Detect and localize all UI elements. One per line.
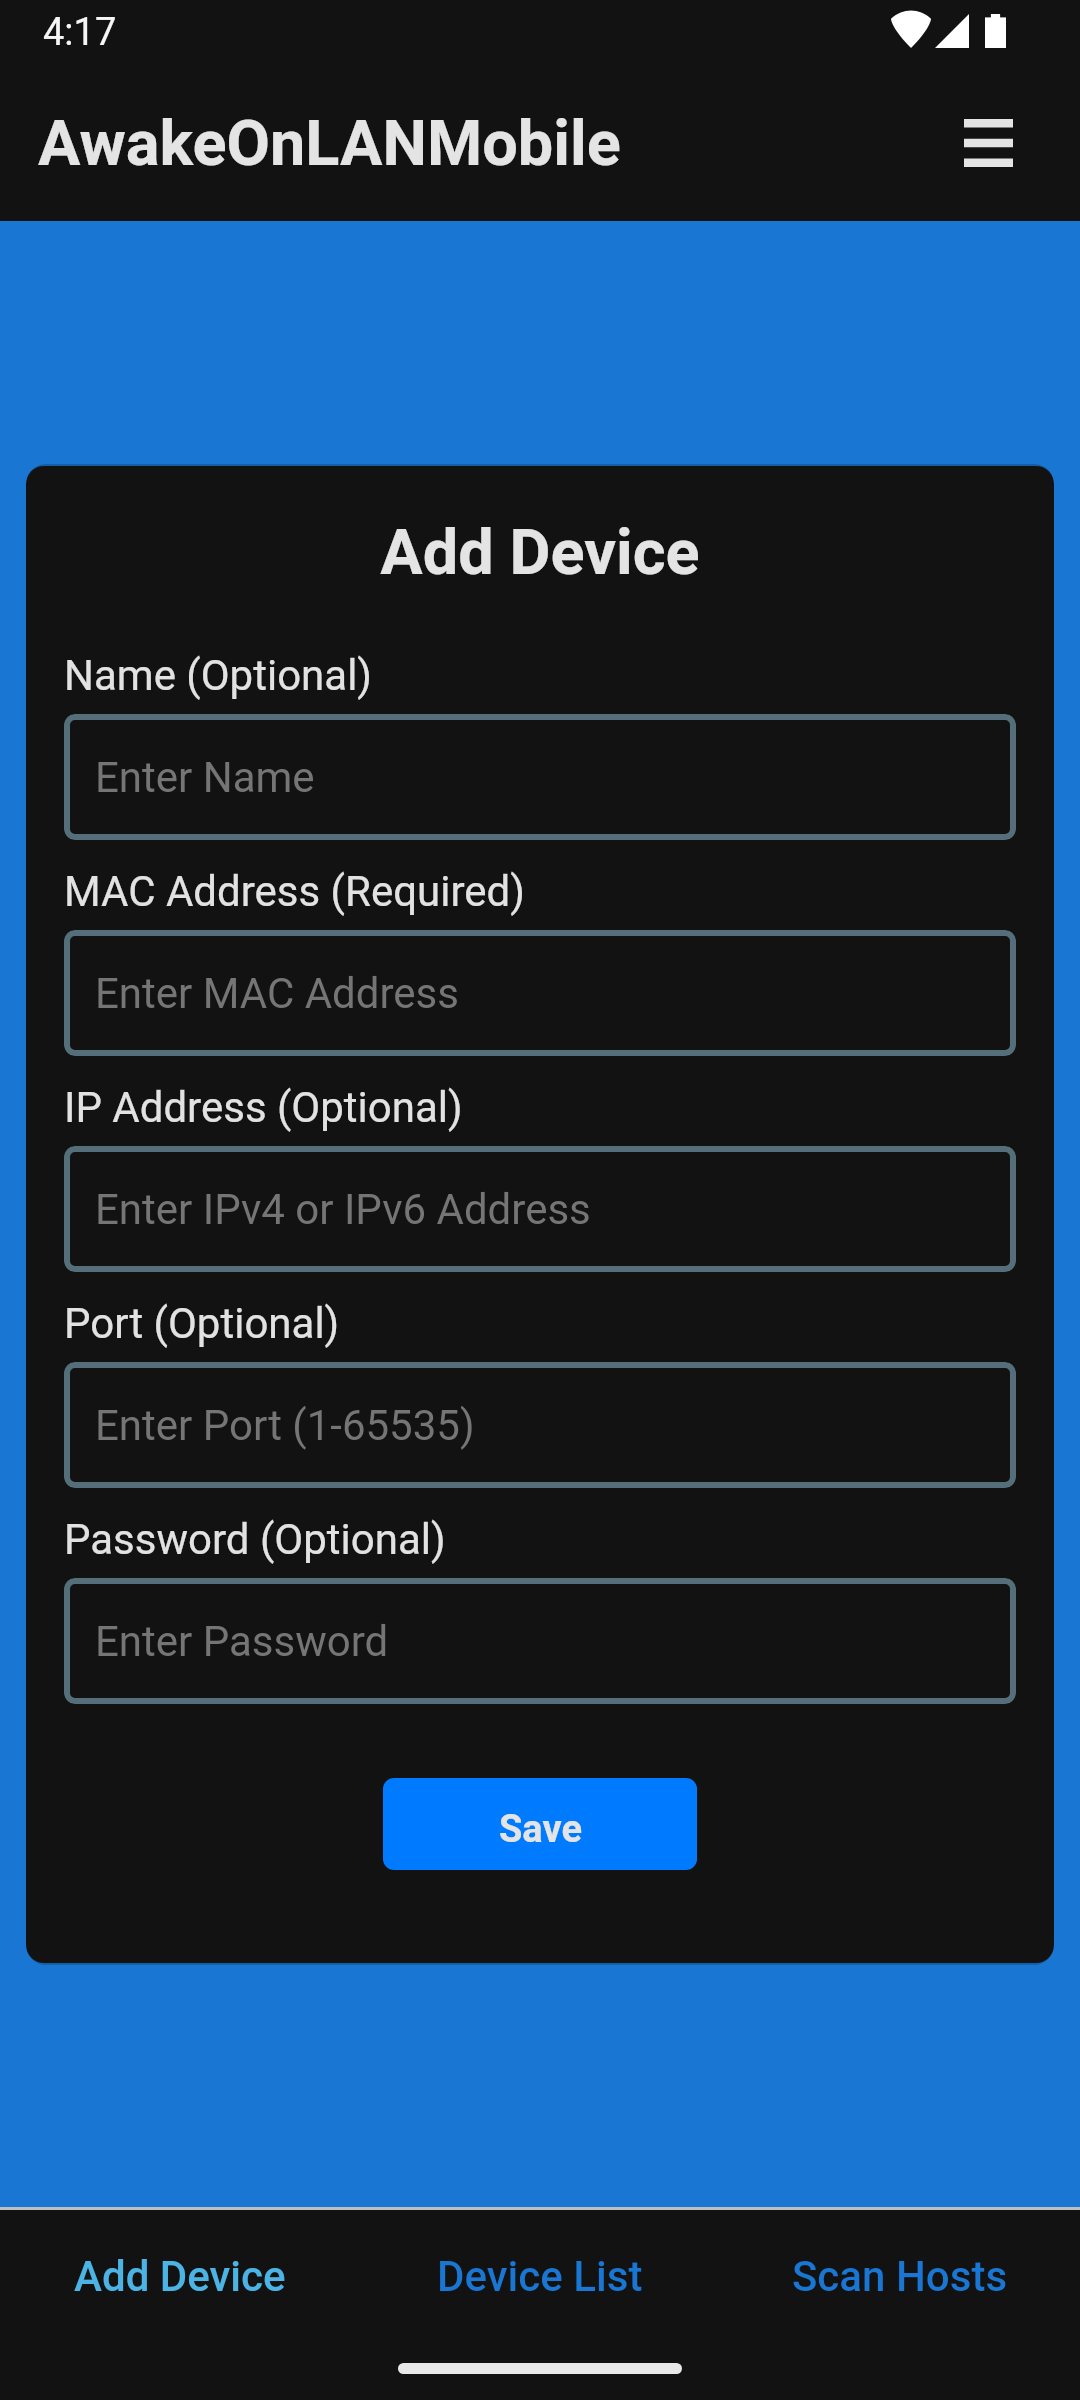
staticText: Name (Optional): [64, 651, 372, 700]
staticText: 4:17: [43, 10, 117, 55]
button[interactable]: Enter Name: [64, 714, 1016, 840]
button[interactable]: Open navigation menu: [938, 93, 1038, 193]
staticText: MAC Address (Required): [64, 867, 525, 916]
button[interactable]: Enter IPv4 or IPv6 Address: [64, 1146, 1016, 1272]
staticText: Enter Password: [95, 1617, 389, 1666]
staticText: Enter MAC Address: [95, 969, 459, 1018]
staticText: IP Address (Optional): [64, 1083, 463, 1132]
button[interactable]: Save: [383, 1778, 697, 1870]
button[interactable]: Enter Password: [64, 1578, 1016, 1704]
staticText: Enter Port (1-65535): [95, 1401, 475, 1450]
button[interactable]: Scan Hosts: [720, 2210, 1080, 2341]
button[interactable]: Enter MAC Address: [64, 930, 1016, 1056]
staticText: Add Device: [64, 516, 1016, 590]
staticText: Device List: [437, 2252, 643, 2301]
button[interactable]: Add Device: [0, 2210, 360, 2341]
staticText: Password (Optional): [64, 1515, 446, 1564]
staticText: AwakeOnLANMobile: [38, 107, 621, 181]
staticText: Enter Name: [95, 753, 315, 802]
staticText: Add Device: [74, 2252, 286, 2301]
staticText: Save: [499, 1807, 582, 1852]
button[interactable]: Enter Port (1-65535): [64, 1362, 1016, 1488]
staticText: Scan Hosts: [792, 2252, 1008, 2301]
staticText: Enter IPv4 or IPv6 Address: [95, 1185, 591, 1234]
button[interactable]: Device List: [360, 2210, 720, 2341]
staticText: Port (Optional): [64, 1299, 340, 1348]
